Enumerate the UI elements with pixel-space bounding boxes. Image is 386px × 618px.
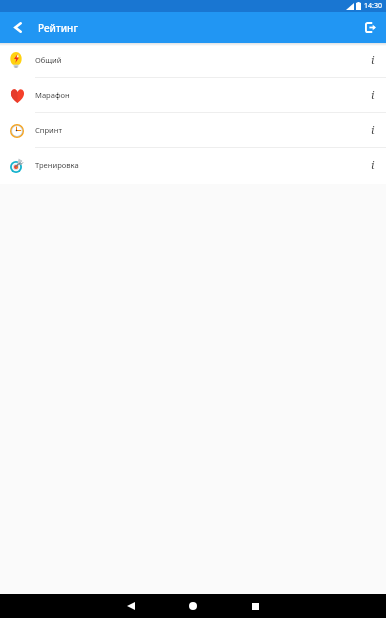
button[interactable]: Info (359, 43, 386, 78)
button[interactable]: Спринт (0, 113, 386, 148)
staticText: Марафон (35, 90, 70, 100)
button[interactable]: Log out (355, 12, 386, 43)
button[interactable]: Back (0, 12, 35, 43)
staticText: i (371, 52, 375, 68)
button[interactable]: Info (359, 113, 386, 148)
staticText: Спринт (35, 125, 62, 135)
button[interactable]: Общий (0, 43, 386, 78)
button[interactable]: Тренировка (0, 148, 386, 183)
button[interactable]: Info (359, 78, 386, 113)
staticText: i (371, 122, 375, 138)
staticText: Общий (35, 55, 62, 65)
button[interactable]: Recent apps (205, 594, 305, 618)
staticText: i (371, 87, 375, 103)
staticText: i (371, 157, 375, 173)
button[interactable]: Home (181, 594, 205, 618)
button[interactable]: Info (359, 148, 386, 183)
button[interactable]: Марафон (0, 78, 386, 113)
staticText: Рейтинг (38, 21, 78, 35)
staticText: Тренировка (35, 160, 79, 170)
button[interactable]: Back (81, 594, 181, 618)
staticText: 14:30 (364, 1, 382, 11)
